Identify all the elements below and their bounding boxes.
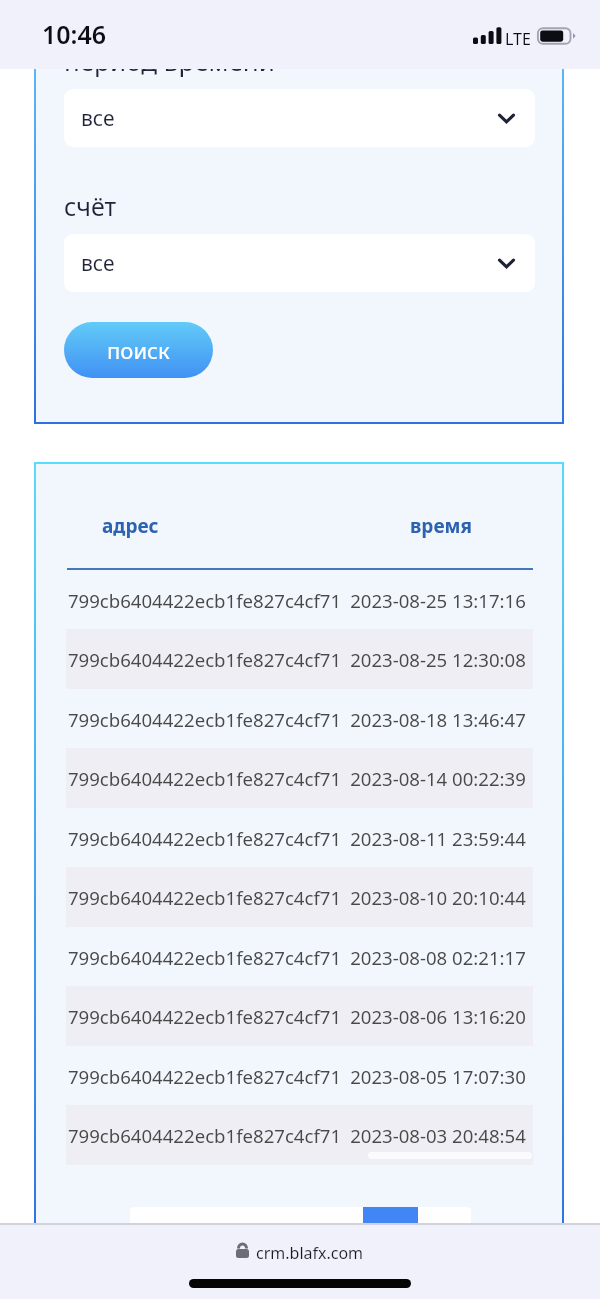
staticText: 799cb6404422ecb1fe827c4cf71 — [66, 588, 343, 613]
staticText: LTE — [505, 28, 531, 50]
button[interactable]: 799cb6404422ecb1fe827c4cf71 — [66, 629, 533, 689]
staticText: 2023-08-18 13:46:47 — [343, 707, 533, 732]
staticText: 2023-08-11 23:59:44 — [343, 826, 533, 851]
staticText: счёт — [64, 189, 117, 223]
button[interactable]: 799cb6404422ecb1fe827c4cf71 — [66, 1105, 533, 1165]
staticText: 799cb6404422ecb1fe827c4cf71 — [66, 945, 343, 970]
button[interactable]: все — [64, 89, 535, 147]
staticText: период времени — [64, 43, 275, 78]
button[interactable]: 799cb6404422ecb1fe827c4cf71 — [66, 748, 533, 808]
button[interactable]: 799cb6404422ecb1fe827c4cf71 — [66, 808, 533, 868]
staticText: 799cb6404422ecb1fe827c4cf71 — [66, 707, 343, 732]
staticText: все — [81, 249, 115, 278]
staticText: 799cb6404422ecb1fe827c4cf71 — [66, 1123, 343, 1148]
button[interactable]: поиск — [64, 322, 213, 378]
button[interactable]: 799cb6404422ecb1fe827c4cf71 — [66, 867, 533, 927]
staticText: 2023-08-05 17:07:30 — [343, 1064, 533, 1089]
button[interactable]: 799cb6404422ecb1fe827c4cf71 — [66, 689, 533, 749]
staticText: 2023-08-06 13:16:20 — [343, 1004, 533, 1029]
staticText: 10:46 — [42, 17, 107, 51]
staticText: 799cb6404422ecb1fe827c4cf71 — [66, 766, 343, 791]
staticText: 799cb6404422ecb1fe827c4cf71 — [66, 1004, 343, 1029]
button[interactable]: Page 1 — [363, 1207, 418, 1263]
staticText: 2023-08-08 02:21:17 — [343, 945, 533, 970]
staticText: 2023-08-10 20:10:44 — [343, 885, 533, 910]
staticText: 2023-08-03 20:48:54 — [343, 1123, 533, 1148]
staticText: 2023-08-14 00:22:39 — [343, 766, 533, 791]
staticText: все — [81, 104, 115, 133]
staticText: 2023-08-25 13:17:16 — [343, 588, 533, 613]
staticText: адрес — [102, 513, 159, 539]
staticText: crm.blafx.com — [256, 1242, 364, 1264]
staticText: поиск — [107, 335, 170, 365]
button[interactable]: 799cb6404422ecb1fe827c4cf71 — [66, 986, 533, 1046]
button[interactable]: 799cb6404422ecb1fe827c4cf71 — [66, 1046, 533, 1106]
staticText: 799cb6404422ecb1fe827c4cf71 — [66, 885, 343, 910]
staticText: 799cb6404422ecb1fe827c4cf71 — [66, 826, 343, 851]
staticText: 799cb6404422ecb1fe827c4cf71 — [66, 1064, 343, 1089]
button[interactable]: 799cb6404422ecb1fe827c4cf71 — [66, 570, 533, 630]
button[interactable]: 799cb6404422ecb1fe827c4cf71 — [66, 927, 533, 987]
staticText: 2023-08-25 12:30:08 — [343, 647, 533, 672]
button[interactable]: все — [64, 234, 535, 292]
staticText: 799cb6404422ecb1fe827c4cf71 — [66, 647, 343, 672]
staticText: время — [410, 513, 472, 539]
